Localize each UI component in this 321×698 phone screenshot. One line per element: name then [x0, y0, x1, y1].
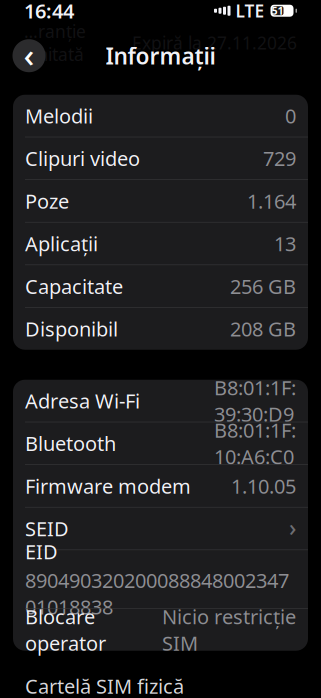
staticText: Melodii [25, 102, 93, 129]
staticText: EID [25, 538, 58, 565]
button[interactable]: Înapoi [7, 34, 51, 78]
staticText: 729 [263, 145, 296, 172]
staticText: B8:01:1F:10:A6:C0 [214, 417, 296, 470]
staticText: Cartelă SIM fizică [25, 673, 184, 698]
button[interactable]: Clipuri video [13, 137, 308, 179]
staticText: 208 GB [230, 315, 296, 342]
staticText: Capacitate [25, 273, 123, 299]
staticText: Aplicații [25, 230, 98, 257]
button[interactable]: EID [13, 550, 308, 608]
button[interactable]: Capacitate [13, 265, 308, 307]
button[interactable]: Blocare operator [13, 609, 308, 651]
button[interactable]: SEID [13, 507, 308, 549]
button[interactable]: Poze [13, 180, 308, 222]
staticText: ‹ [23, 32, 34, 76]
staticText: Expiră la 27.11.2026 [132, 31, 297, 54]
button[interactable]: Bluetooth [13, 422, 308, 464]
staticText: Clipuri video [25, 145, 140, 172]
staticText: Poze [25, 188, 69, 214]
staticText: 13 [274, 230, 296, 257]
staticText: Nicio restricție SIM [162, 603, 296, 656]
staticText: SEID [25, 515, 69, 542]
staticText: › [289, 512, 296, 543]
button[interactable]: Disponibil [13, 308, 308, 350]
staticText: Informații [105, 41, 215, 71]
staticText: Blocare operator [25, 603, 106, 656]
staticText: Firmware modem [25, 473, 191, 499]
staticText: 1.10.05 [231, 473, 296, 499]
staticText: Bluetooth [25, 430, 116, 457]
staticText: 256 GB [230, 273, 296, 299]
staticText: 1.164 [247, 188, 296, 214]
button[interactable]: Adresa Wi-Fi [13, 380, 308, 422]
staticText: B8:01:1F:39:30:D9 [214, 374, 296, 427]
button[interactable]: Aplicații [13, 222, 308, 264]
staticText: 51 [271, 4, 283, 18]
staticText: …ranție limitată [24, 20, 86, 66]
staticText: Disponibil [25, 315, 118, 342]
staticText: LTE [235, 0, 264, 22]
staticText: 89049032020008884800234701018838 [25, 567, 289, 620]
button[interactable]: Firmware modem [13, 465, 308, 507]
staticText: 16:44 [24, 0, 74, 24]
staticText: Adresa Wi-Fi [25, 387, 140, 414]
button[interactable]: Melodii [13, 95, 308, 137]
staticText: 0 [285, 102, 296, 129]
